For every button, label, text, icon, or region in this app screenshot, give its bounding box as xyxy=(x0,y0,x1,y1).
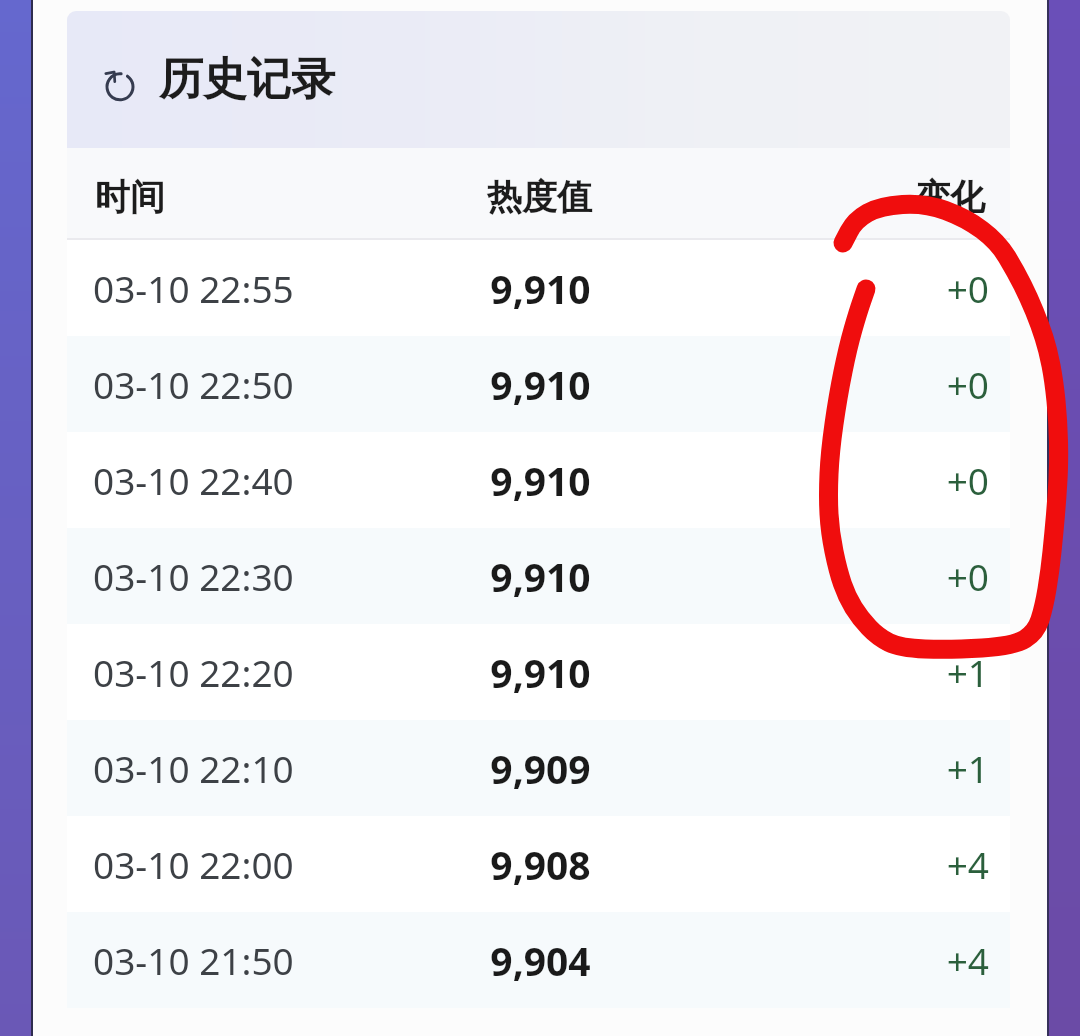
staticText: +0 xyxy=(690,455,989,505)
staticText: 9,908 xyxy=(391,838,690,891)
staticText: 03-10 22:20 xyxy=(93,647,391,697)
staticText: 9,910 xyxy=(391,646,690,699)
staticText: +1 xyxy=(690,647,989,697)
staticText: 9,910 xyxy=(391,550,690,603)
staticText: 03-10 22:30 xyxy=(93,551,391,601)
staticText: 03-10 22:50 xyxy=(93,359,391,409)
staticText: +4 xyxy=(690,935,989,985)
staticText: 变化 xyxy=(688,175,985,219)
staticText: 历史记录 xyxy=(159,52,335,107)
button[interactable]: 03-10 22:30 xyxy=(67,528,1010,624)
button[interactable]: 03-10 22:00 xyxy=(67,816,1010,912)
staticText: 热度值 xyxy=(391,175,688,219)
button[interactable]: 03-10 22:55 xyxy=(67,240,1010,336)
staticText: 9,910 xyxy=(391,262,690,315)
staticText: 9,910 xyxy=(391,358,690,411)
staticText: +1 xyxy=(690,743,989,793)
staticText: 03-10 22:40 xyxy=(93,455,391,505)
staticText: 03-10 21:50 xyxy=(93,935,391,985)
staticText: +0 xyxy=(690,263,989,313)
staticText: +0 xyxy=(690,551,989,601)
staticText: 03-10 22:10 xyxy=(93,743,391,793)
button[interactable]: 03-10 22:50 xyxy=(67,336,1010,432)
staticText: 9,904 xyxy=(391,934,690,987)
staticText: 9,909 xyxy=(391,742,690,795)
button[interactable]: 03-10 22:40 xyxy=(67,432,1010,528)
button[interactable]: 03-10 21:50 xyxy=(67,912,1010,1008)
button[interactable]: 03-10 22:10 xyxy=(67,720,1010,816)
button[interactable]: 03-10 22:20 xyxy=(67,624,1010,720)
staticText: +4 xyxy=(690,839,989,889)
staticText: 03-10 22:00 xyxy=(93,839,391,889)
staticText: 时间 xyxy=(95,175,391,219)
button[interactable]: Refresh history xyxy=(67,11,1010,148)
staticText: 03-10 22:55 xyxy=(93,263,391,313)
staticText: 9,910 xyxy=(391,454,690,507)
staticText: +0 xyxy=(690,359,989,409)
button[interactable]: Refresh history xyxy=(100,58,144,102)
